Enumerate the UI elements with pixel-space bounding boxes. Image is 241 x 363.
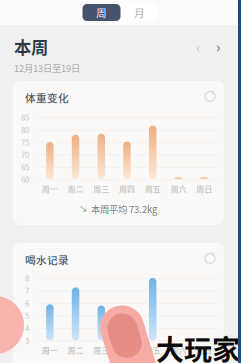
button[interactable]: 月: [120, 4, 158, 21]
staticText: 周六: [170, 344, 186, 356]
staticText: 周六: [170, 183, 186, 195]
staticText: 12月13日至19日: [14, 61, 80, 75]
staticText: ›: [216, 35, 220, 57]
staticText: ‹: [196, 35, 200, 57]
staticText: 6: [25, 297, 29, 309]
staticText: 周三: [93, 183, 109, 195]
staticText: 8: [25, 272, 29, 284]
staticText: 周二: [68, 344, 84, 356]
staticText: 本周: [14, 34, 48, 59]
staticText: 70: [21, 148, 29, 160]
staticText: 喝水记录: [25, 252, 69, 267]
staticText: 80: [21, 124, 29, 135]
staticText: 周三: [93, 344, 109, 356]
staticText: 体重变化: [25, 90, 69, 105]
staticText: 周日: [196, 183, 212, 195]
button[interactable]: 下一周: [210, 38, 226, 54]
staticText: 周五: [145, 344, 161, 356]
staticText: 周日: [196, 344, 212, 356]
staticText: 本周平均 73.2kg: [91, 202, 157, 216]
staticText: 3: [25, 334, 29, 346]
staticText: 大玩家: [156, 328, 240, 363]
staticText: 85: [21, 111, 29, 123]
staticText: 周: [96, 5, 107, 20]
staticText: 7: [25, 284, 29, 296]
staticText: 周一: [42, 183, 58, 195]
button[interactable]: 上一周: [190, 38, 206, 54]
staticText: 60: [21, 173, 29, 185]
staticText: 65: [21, 161, 29, 172]
staticText: 周二: [68, 183, 84, 195]
staticText: 4: [25, 322, 29, 334]
staticText: 周四: [119, 183, 135, 195]
staticText: 周一: [42, 344, 58, 356]
button[interactable]: 周: [82, 4, 120, 21]
staticText: 周五: [145, 183, 161, 195]
staticText: 75: [21, 136, 29, 148]
staticText: 月: [134, 5, 145, 20]
staticText: 5: [25, 309, 29, 321]
